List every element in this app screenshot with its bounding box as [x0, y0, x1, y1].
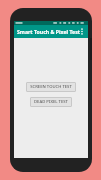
- button[interactable]: SCREEN TOUCH TEST: [26, 82, 76, 92]
- staticText: SCREEN TOUCH TEST: [30, 84, 72, 90]
- button[interactable]: More options: [77, 27, 86, 36]
- staticText: DEAD PIXEL TEST: [34, 99, 68, 105]
- button[interactable]: DEAD PIXEL TEST: [30, 97, 72, 107]
- staticText: Smart Touch & Pixel Test: [17, 28, 81, 35]
